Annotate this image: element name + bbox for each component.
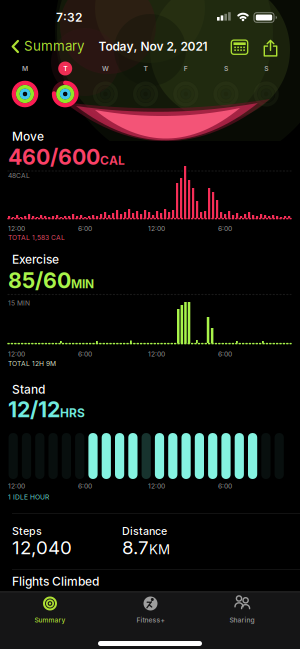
staticText: Move <box>12 129 44 144</box>
button[interactable]: Tuesday, selected <box>45 58 85 110</box>
button[interactable]: Saturday <box>206 58 246 110</box>
staticText: 6:00 <box>218 224 232 233</box>
staticText: 12:00 <box>148 224 165 233</box>
button[interactable]: Sharing <box>212 592 272 630</box>
staticText: 6:00 <box>218 482 232 490</box>
button[interactable]: Sunday <box>246 58 286 110</box>
staticText: 48CAL <box>8 171 30 180</box>
staticText: 6:00 <box>218 350 232 358</box>
staticText: M <box>22 64 28 73</box>
staticText: Exercise <box>12 252 59 267</box>
staticText: Today, Nov 2, 2021 <box>98 39 207 54</box>
staticText: 12,040 <box>12 536 72 559</box>
button[interactable]: Thursday <box>126 58 166 110</box>
staticText: 12:00 <box>8 224 25 233</box>
button[interactable]: Back <box>8 37 88 55</box>
staticText: 460/600CAL <box>8 144 125 170</box>
staticText: 12:00 <box>148 350 165 358</box>
button[interactable]: Summary <box>20 592 80 630</box>
staticText: 6:00 <box>78 224 92 233</box>
staticText: Stand <box>12 382 45 397</box>
staticText: S <box>224 64 228 73</box>
staticText: Fitness+ <box>136 616 164 624</box>
staticText: Sharing <box>229 616 254 624</box>
staticText: TOTAL 12H 9M <box>8 359 56 368</box>
staticText: 15 MIN <box>8 299 30 307</box>
staticText: 12:00 <box>8 350 25 358</box>
button[interactable]: Fitness+ <box>120 592 180 630</box>
staticText: 6:00 <box>78 350 92 358</box>
staticText: 7:32 <box>56 10 82 25</box>
staticText: W <box>102 64 109 73</box>
staticText: S <box>264 64 268 73</box>
button[interactable]: Monday <box>5 58 45 110</box>
staticText: 1 IDLE HOUR <box>8 493 49 501</box>
staticText: Flights Climbed <box>12 574 99 589</box>
staticText: 85/60MIN <box>8 268 94 293</box>
staticText: 8.7KM <box>122 536 170 558</box>
button[interactable]: Friday <box>166 58 206 110</box>
staticText: 12:00 <box>8 482 25 490</box>
staticText: Summary <box>34 616 65 624</box>
staticText: Distance <box>122 524 167 537</box>
staticText: Summary <box>24 38 84 54</box>
button[interactable]: Wednesday <box>85 58 125 110</box>
staticText: Steps <box>12 524 42 537</box>
button[interactable]: Calendar <box>230 39 248 56</box>
staticText: T <box>144 64 148 73</box>
staticText: 12/12HRS <box>8 397 85 422</box>
staticText: 12:00 <box>148 482 165 490</box>
staticText: F <box>184 64 188 73</box>
staticText: T <box>63 64 67 73</box>
button[interactable]: Share <box>262 39 278 56</box>
staticText: TOTAL 1,583 CAL <box>8 233 65 242</box>
staticText: 6:00 <box>78 482 92 490</box>
